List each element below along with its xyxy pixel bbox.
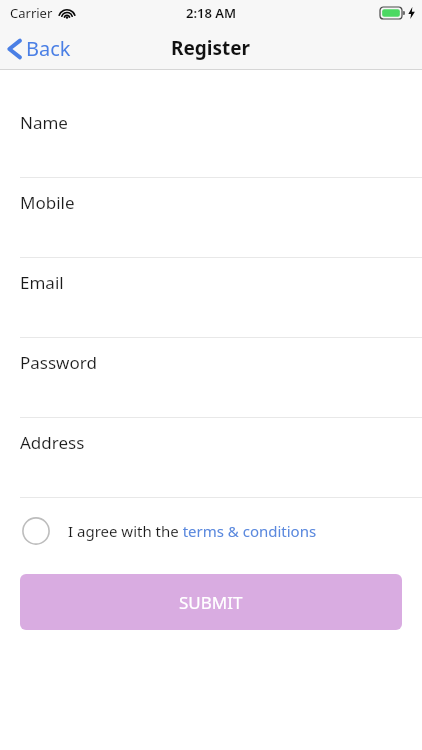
staticText: Name xyxy=(20,111,68,134)
button[interactable]: Agree checkbox xyxy=(0,509,422,553)
staticText: Carrier xyxy=(10,4,53,22)
staticText: 2:18 AM xyxy=(186,4,237,22)
button[interactable]: Back xyxy=(0,29,81,68)
button[interactable]: Address xyxy=(0,418,422,497)
staticText: I agree with the terms & conditions xyxy=(68,521,317,541)
staticText: Register xyxy=(171,35,251,61)
staticText: Email xyxy=(20,271,64,294)
staticText: Back xyxy=(26,35,71,62)
button[interactable]: SUBMIT xyxy=(20,574,402,630)
staticText: Mobile xyxy=(20,191,75,214)
other: Agree checkbox xyxy=(22,517,50,545)
staticText: Password xyxy=(20,351,97,374)
button[interactable]: Email xyxy=(0,258,422,337)
button[interactable]: Mobile xyxy=(0,178,422,257)
button[interactable]: Name xyxy=(0,98,422,177)
staticText: SUBMIT xyxy=(179,591,243,614)
button[interactable]: Password xyxy=(0,338,422,417)
staticText: Address xyxy=(20,431,85,454)
